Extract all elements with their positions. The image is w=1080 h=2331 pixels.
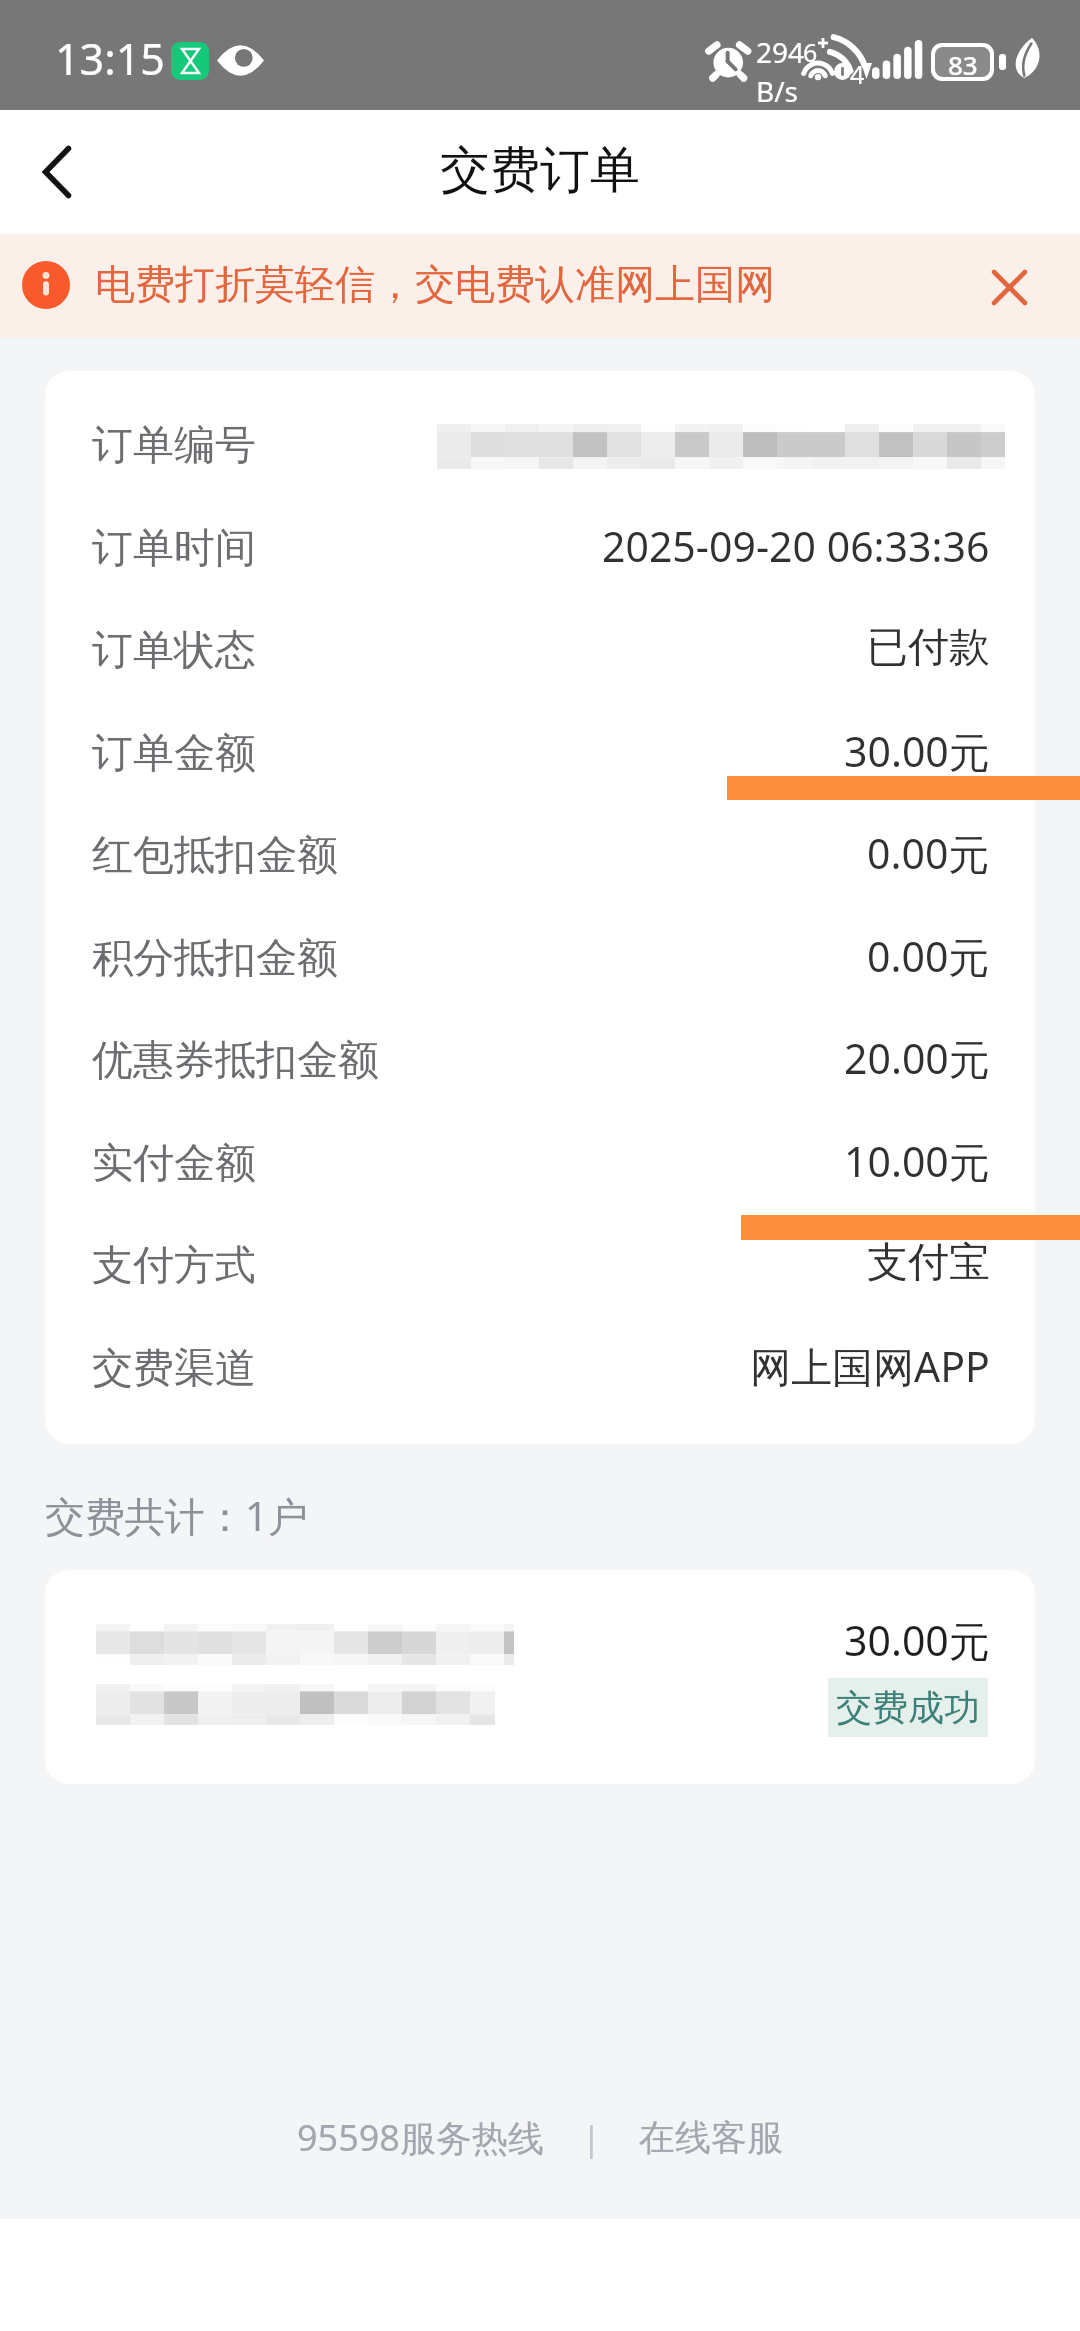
button[interactable]: 支付方式 [92,1215,990,1317]
staticText: 30.00元 [844,1612,990,1668]
staticText: B/s [756,72,799,110]
staticText: 0.00元 [867,928,990,984]
button[interactable]: Close [978,256,1040,318]
button[interactable]: 红包抵扣金额 [92,805,990,907]
staticText: 已付款 [867,622,990,674]
button[interactable]: 电费打折莫轻信，交电费认准网上国网 [0,234,1080,338]
button[interactable]: Back [7,117,107,227]
staticText: 30.00元 [844,723,990,779]
staticText: 订单状态 [92,625,256,677]
staticText: 订单编号 [92,420,256,472]
staticText: 订单时间 [92,523,256,575]
button[interactable]: 95598服务热线 [297,2113,544,2162]
staticText: 支付宝 [867,1237,990,1289]
staticText: 20.00元 [844,1030,990,1086]
button[interactable] [45,1570,1035,1784]
button[interactable]: 实付金额 [92,1113,990,1215]
button[interactable]: 优惠券抵扣金额 [92,1010,990,1112]
staticText: 83 [948,47,978,77]
staticText: 支付方式 [92,1240,256,1292]
staticText: 0.00元 [867,825,990,881]
staticText: 红包抵扣金额 [92,830,338,882]
staticText: 实付金额 [92,1138,256,1190]
button[interactable]: 交费渠道 [92,1318,990,1420]
staticText: 交费成功 [836,1685,980,1730]
button[interactable]: 订单编号 [92,395,990,497]
staticText: 10.00元 [844,1133,990,1189]
staticText: 订单金额 [92,728,256,780]
staticText: | [582,2115,601,2161]
button[interactable]: 订单金额 [92,703,990,805]
button[interactable]: 在线客服 [639,2115,783,2160]
staticText: 交费共计：1户 [45,1488,308,1543]
staticText: 交费订单 [440,139,640,202]
staticText: 交费渠道 [92,1343,256,1395]
button[interactable]: 订单时间 [92,498,990,600]
button[interactable]: 积分抵扣金额 [92,908,990,1010]
staticText: 网上国网APP [750,1338,990,1394]
staticText: 13:15 [55,29,165,79]
staticText: 4 [850,57,865,91]
staticText: 积分抵扣金额 [92,933,338,985]
staticText: 电费打折莫轻信，交电费认准网上国网 [95,259,775,309]
staticText: 294 [756,33,805,71]
staticText: 优惠券抵扣金额 [92,1035,379,1087]
staticText: 2025-09-20 06:33:36 [602,518,990,574]
button[interactable]: 订单状态 [92,600,990,702]
staticText: 6 [803,35,818,69]
